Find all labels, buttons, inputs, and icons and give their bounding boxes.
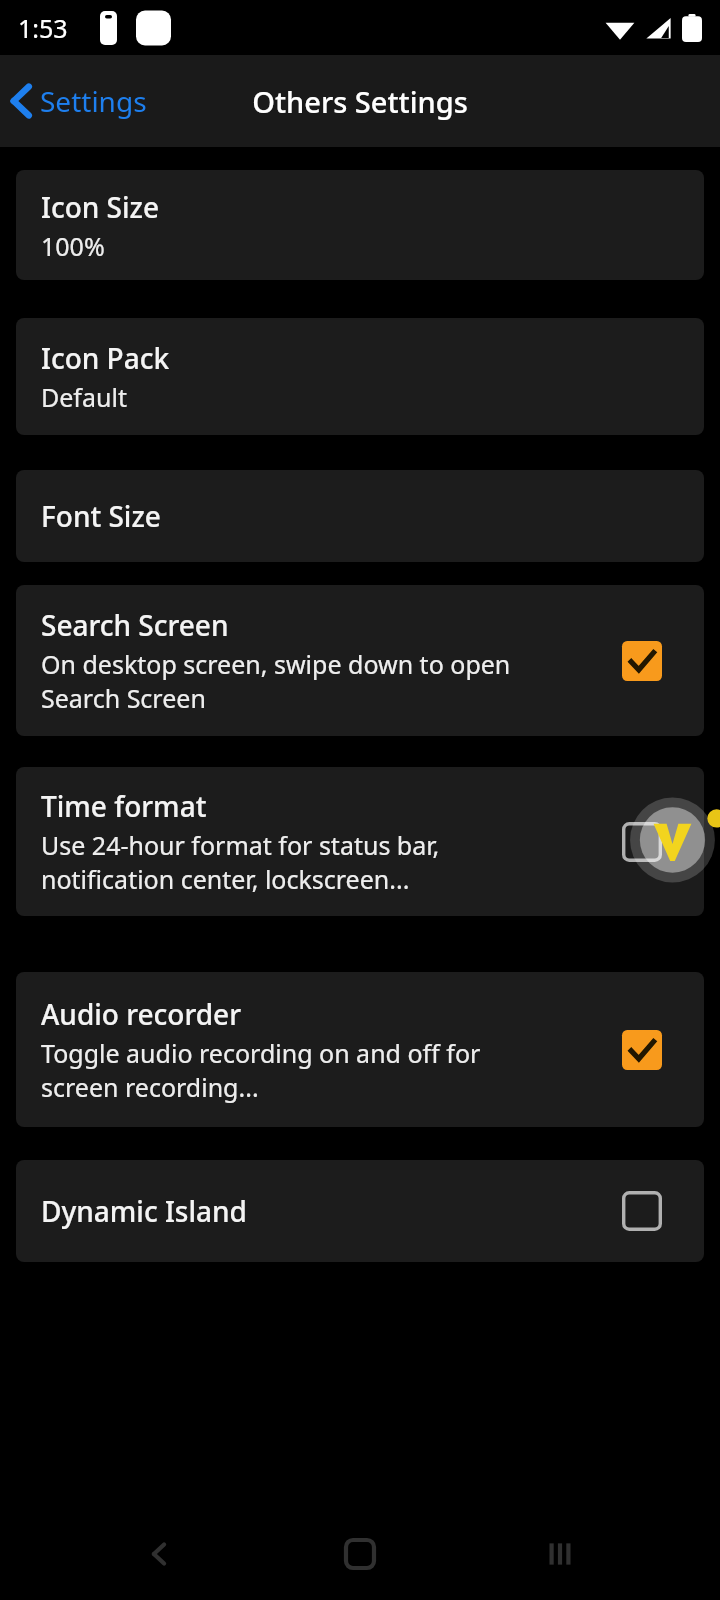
button[interactable]: Time format <box>16 767 704 916</box>
button[interactable]: Recents <box>520 1514 600 1594</box>
staticText: Icon Pack <box>41 339 170 377</box>
button[interactable]: Settings <box>0 73 159 129</box>
button[interactable]: Audio recorder <box>16 972 704 1127</box>
staticText: 1:53 <box>18 11 68 45</box>
staticText: Search Screen <box>41 606 229 644</box>
button[interactable]: Disabled <box>616 1185 668 1237</box>
button[interactable]: Font Size <box>16 470 704 562</box>
staticText: 100% <box>41 229 105 263</box>
button[interactable]: Dynamic Island <box>16 1160 704 1262</box>
staticText: On desktop screen, swipe down to open Se… <box>41 647 511 715</box>
staticText: Settings <box>40 82 147 120</box>
staticText: Others Settings <box>252 82 468 121</box>
button[interactable]: Icon Pack <box>16 318 704 435</box>
button[interactable]: Enabled <box>616 1024 668 1076</box>
staticText: Icon Size <box>41 188 159 226</box>
button[interactable]: Home <box>320 1514 400 1594</box>
button[interactable]: Icon Size <box>16 170 704 280</box>
button[interactable]: Enabled <box>616 635 668 687</box>
staticText: Default <box>41 380 127 414</box>
button[interactable]: Floating app bubble <box>632 806 720 874</box>
staticText: Use 24-hour format for status bar, notif… <box>41 828 440 896</box>
staticText: Audio recorder <box>41 995 241 1033</box>
staticText: Dynamic Island <box>41 1192 247 1230</box>
button[interactable]: Disabled <box>616 816 668 868</box>
button[interactable]: Back <box>120 1514 200 1594</box>
button[interactable]: Search Screen <box>16 585 704 736</box>
staticText: Time format <box>41 787 207 825</box>
staticText: Font Size <box>41 497 161 535</box>
staticText: Toggle audio recording on and off for sc… <box>41 1036 481 1104</box>
